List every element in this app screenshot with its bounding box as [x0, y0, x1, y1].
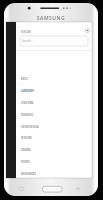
staticText: FUENTES DE SODA [21, 125, 39, 128]
button[interactable]: RESTAURANTES [16, 167, 92, 179]
staticText: POSTRES [21, 160, 30, 163]
staticText: INICIO [21, 77, 28, 80]
staticText: Search... [22, 39, 34, 43]
button[interactable]: DESAYUNOS [16, 108, 92, 120]
staticText: SAMSUNG [4, 15, 98, 22]
staticText: BUSCAR [21, 30, 31, 34]
staticText: RESTAURANTES [21, 172, 36, 175]
staticText: BURGUERS [21, 136, 32, 139]
button[interactable]: PIZZERÍAS [16, 143, 92, 155]
button[interactable]: Search... [20, 36, 88, 46]
button[interactable]: Options [85, 28, 90, 33]
button[interactable]: BURGUERS [16, 131, 92, 143]
staticText: DESAYUNOS [21, 113, 33, 116]
staticText: CEVICHERÍAS [21, 101, 34, 104]
staticText: PIZZERÍAS [21, 148, 31, 151]
button[interactable]: CANTERBURY [16, 84, 92, 96]
staticText: CANTERBURY [21, 89, 35, 92]
button[interactable]: FUENTES DE SODA [16, 120, 92, 132]
button[interactable]: INICIO [16, 72, 92, 84]
button[interactable]: POSTRES [16, 155, 92, 167]
button[interactable]: CEVICHERÍAS [16, 96, 92, 108]
